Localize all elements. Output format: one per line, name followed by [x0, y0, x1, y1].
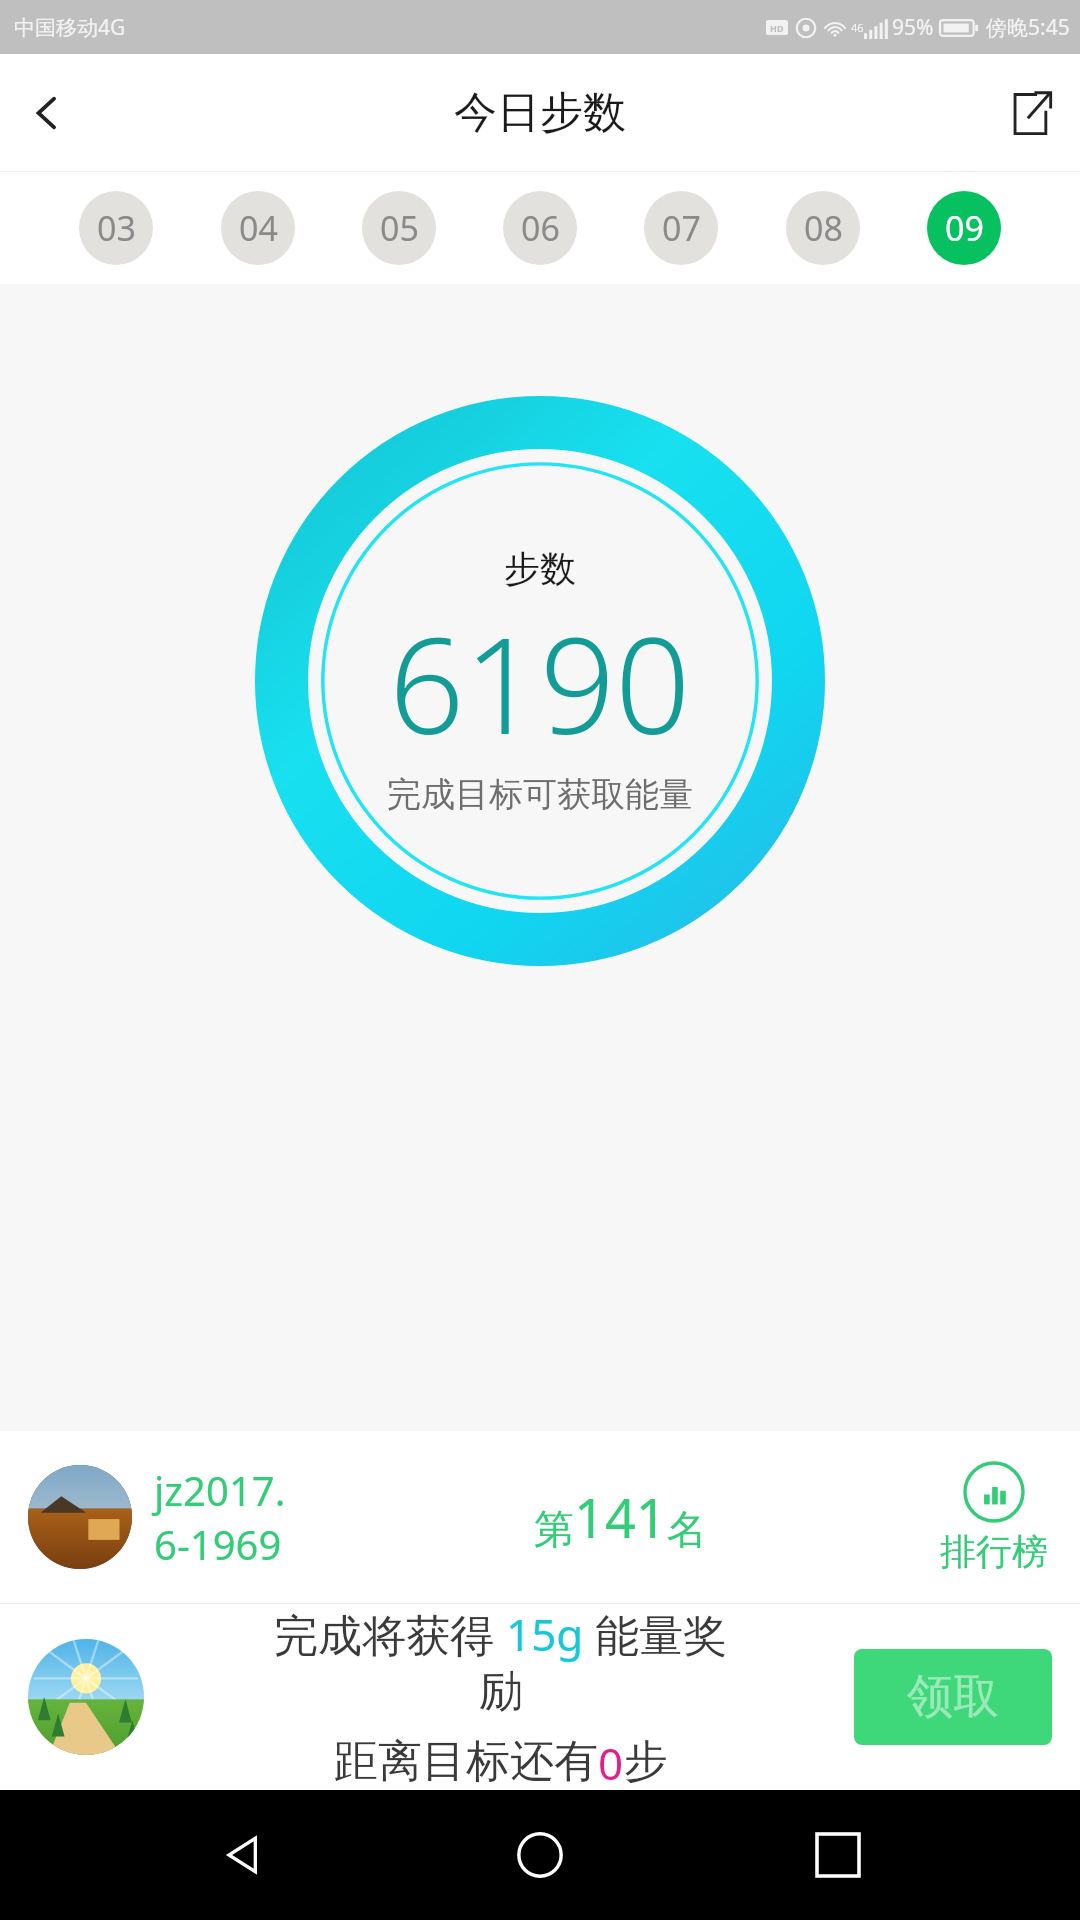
staticText: 46 [851, 20, 864, 35]
button[interactable]: 03 [79, 191, 153, 265]
button[interactable]: 08 [786, 191, 860, 265]
button[interactable]: 05 [362, 191, 436, 265]
button[interactable]: 04 [221, 191, 295, 265]
staticText: 95% [892, 13, 934, 42]
button[interactable]: Recents [783, 1800, 893, 1910]
staticText: 0 [598, 1733, 624, 1790]
staticText: 完成将获得 [274, 1604, 506, 1664]
button[interactable]: 06 [503, 191, 577, 265]
staticText: 141 [574, 1480, 667, 1554]
staticText: 05 [380, 205, 419, 251]
staticText: 07 [662, 205, 701, 251]
button[interactable]: 排行榜 [936, 1461, 1052, 1574]
staticText: 名 [667, 1504, 707, 1554]
staticText: 傍晚5:45 [986, 13, 1070, 42]
button[interactable]: Share [980, 63, 1080, 163]
staticText: 能量奖 [584, 1604, 728, 1664]
button[interactable]: 领取 [854, 1649, 1052, 1745]
staticText: 步 [624, 1734, 668, 1789]
staticText: HD [770, 22, 784, 34]
button[interactable]: Home [485, 1800, 595, 1910]
staticText: 步数 [504, 546, 576, 591]
staticText: 距离目标还有 [334, 1734, 598, 1789]
staticText: 中国移动4G [14, 13, 126, 42]
button[interactable]: 07 [644, 191, 718, 265]
staticText: 今日步数 [454, 86, 626, 140]
staticText: 03 [97, 205, 136, 251]
staticText: 领取 [907, 1668, 999, 1726]
button[interactable]: Back [0, 65, 96, 161]
staticText: jz2017.6-1969 [154, 1463, 304, 1571]
button[interactable]: 09 [927, 191, 1001, 265]
staticText: 励 [479, 1664, 523, 1719]
staticText: 第 [534, 1504, 574, 1554]
staticText: 09 [945, 205, 984, 251]
staticText: 6190 [389, 593, 691, 773]
staticText: 15g [506, 1604, 584, 1664]
staticText: 08 [804, 205, 843, 251]
staticText: 完成目标可获取能量 [387, 773, 693, 816]
staticText: 排行榜 [940, 1529, 1048, 1574]
staticText: 04 [239, 205, 278, 251]
staticText: 06 [521, 205, 560, 251]
button[interactable]: Back [188, 1800, 298, 1910]
